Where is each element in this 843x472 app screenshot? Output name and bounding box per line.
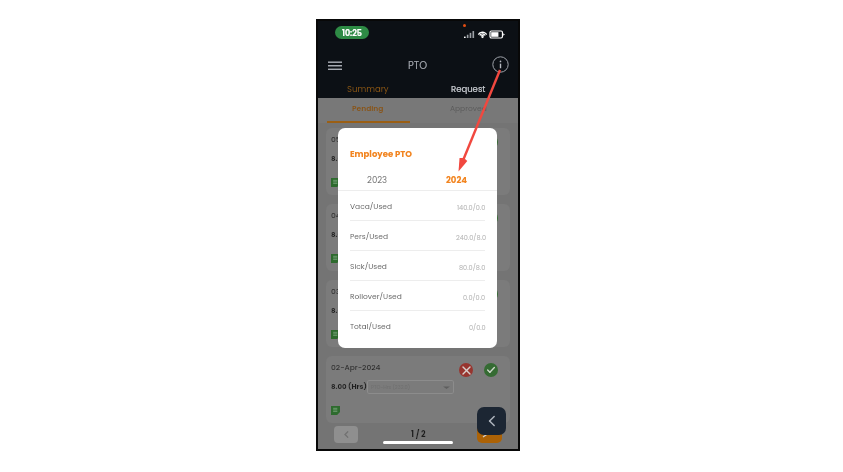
staticText: 0/0.0 [469, 323, 486, 332]
button[interactable]: Approve [484, 135, 498, 149]
button[interactable]: Note [331, 330, 340, 339]
staticText: 80.0/8.0 [459, 263, 486, 272]
staticText: 02-Apr-2024 [331, 362, 381, 372]
staticText: 03-Apr-2024 [331, 286, 381, 296]
staticText: 0.0/0.0 [463, 293, 486, 302]
staticText: 10:25 [342, 28, 362, 39]
staticText: Approved [450, 103, 487, 113]
staticText: 04-Apr-2024 [331, 210, 381, 220]
staticText: 8.00 (Hrs) [331, 382, 367, 392]
staticText: 2023 [367, 174, 388, 186]
staticText: 05-Apr-2024 [331, 134, 381, 144]
staticText: Vaca/Used [350, 201, 393, 211]
button[interactable]: 2024 [417, 173, 497, 187]
staticText: Sick/Used [350, 261, 387, 271]
button[interactable]: Note [331, 254, 340, 263]
staticText: PTO [408, 58, 428, 72]
button[interactable]: Reject [459, 135, 473, 149]
button[interactable]: 2023 [338, 173, 417, 187]
staticText: Request [451, 83, 486, 95]
staticText: Pending [352, 103, 384, 113]
button[interactable]: Approve [484, 287, 498, 301]
button[interactable]: Pending [318, 98, 418, 121]
button[interactable]: Reject [459, 363, 473, 377]
button[interactable]: Reject [459, 211, 473, 225]
staticText: Summary [347, 83, 389, 95]
button[interactable]: 02-Apr-2024 [326, 356, 510, 423]
button[interactable]: PTO-Hrs (232.0) [367, 380, 454, 394]
button[interactable]: 05-Apr-2024 [326, 128, 510, 195]
staticText: 8.00 (Hrs) [331, 306, 367, 316]
staticText: 8.00 (Hrs) [331, 154, 367, 164]
staticText: 8.00 (Hrs) [331, 230, 367, 240]
button[interactable]: 03-Apr-2024 [326, 280, 510, 347]
button[interactable]: Approved [418, 98, 518, 121]
button[interactable]: Menu [328, 58, 342, 72]
button[interactable]: Edit [477, 418, 502, 443]
button[interactable]: Request [418, 80, 518, 98]
staticText: Rollover/Used [350, 291, 402, 301]
button[interactable]: Approve [484, 211, 498, 225]
staticText: PTO-Hrs (232.0) [371, 308, 410, 315]
staticText: PTO-Hrs (232.0) [371, 232, 410, 239]
button[interactable]: Info [492, 56, 509, 73]
staticText: PTO-Hrs (232.0) [371, 156, 410, 163]
button[interactable]: PTO-Hrs (232.0) [367, 152, 454, 166]
button[interactable]: Approve [484, 363, 498, 377]
button[interactable]: Summary [318, 80, 418, 98]
staticText: 2024 [446, 174, 468, 186]
staticText: 1 / 2 [411, 429, 426, 440]
staticText: Employee PTO [350, 148, 412, 160]
staticText: Pers/Used [350, 231, 388, 241]
staticText: 240.0/8.0 [456, 233, 486, 242]
button[interactable]: Note [331, 178, 340, 187]
staticText: 140.0/0.0 [457, 203, 486, 212]
button[interactable]: PTO-Hrs (232.0) [367, 304, 454, 318]
button[interactable]: Reject [459, 287, 473, 301]
button[interactable]: Back [477, 407, 506, 435]
button[interactable]: Previous page [334, 426, 358, 443]
button[interactable]: Note [331, 406, 340, 415]
button[interactable]: 04-Apr-2024 [326, 204, 510, 271]
button[interactable]: PTO-Hrs (232.0) [367, 228, 454, 242]
staticText: Total/Used [350, 321, 391, 331]
